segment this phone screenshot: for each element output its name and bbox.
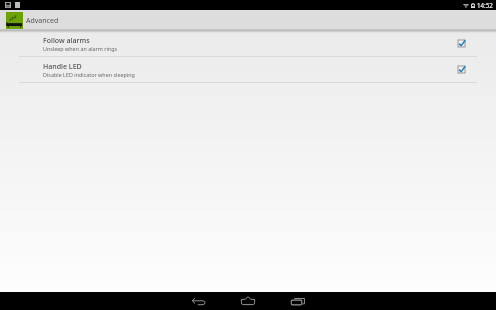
button[interactable]: Toggle [456,64,467,75]
button[interactable]: Home [231,292,265,310]
button[interactable]: Handle LED [0,57,496,82]
button[interactable]: Recents [281,292,315,310]
staticText: Unsleep when an alarm rings [43,45,118,52]
button[interactable]: Back [181,292,215,310]
staticText: Disable LED indicator when sleeping [43,71,135,78]
button[interactable]: Follow alarms [0,31,496,56]
button[interactable]: Toggle [456,38,467,49]
staticText: Handle LED [43,61,82,71]
staticText: Follow alarms [43,35,90,45]
staticText: 14:52 [477,1,493,9]
staticText: Advanced [26,16,59,26]
